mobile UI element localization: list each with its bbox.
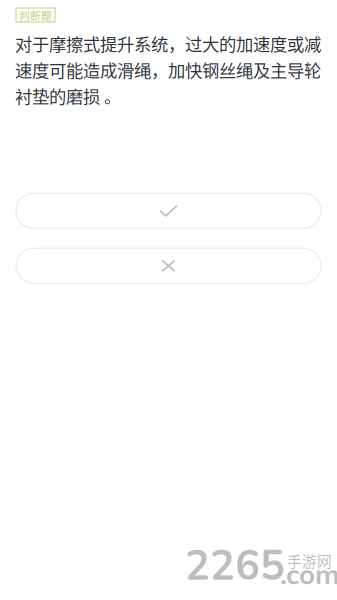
staticText: 2265 [185,538,285,594]
staticText: 对于摩擦式提升系统，过大的加速度或减速度可能造成滑绳，加快钢丝绳及主导轮衬垫的磨… [15,31,321,108]
button[interactable]: 错误 [16,248,321,283]
staticText: 判断题 [19,7,52,23]
button[interactable]: 正确 [16,193,321,228]
staticText: 手游网 [287,550,332,571]
staticText: .com [280,556,337,594]
